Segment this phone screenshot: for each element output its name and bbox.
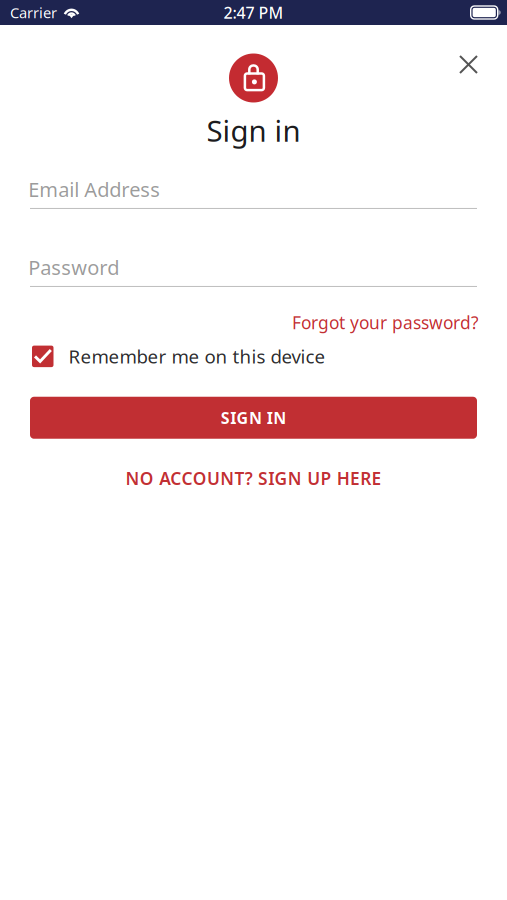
staticText: Carrier: [10, 3, 57, 22]
staticText: 2:47 PM: [223, 2, 283, 23]
staticText: SIGN IN: [221, 407, 286, 428]
staticText: Remember me on this device: [68, 344, 325, 369]
staticText: Password: [28, 254, 119, 281]
button[interactable]: NO ACCOUNT? SIGN UP HERE: [125, 467, 382, 490]
button[interactable]: Forgot your password?: [290, 311, 477, 334]
staticText: Forgot your password?: [292, 311, 479, 334]
button[interactable]: SIGN IN: [30, 397, 477, 439]
button[interactable]: Close: [450, 46, 487, 83]
button[interactable]: Remember me on this device: [30, 344, 325, 369]
staticText: Email Address: [28, 176, 160, 203]
staticText: NO ACCOUNT? SIGN UP HERE: [125, 467, 382, 490]
staticText: Sign in: [206, 111, 300, 150]
